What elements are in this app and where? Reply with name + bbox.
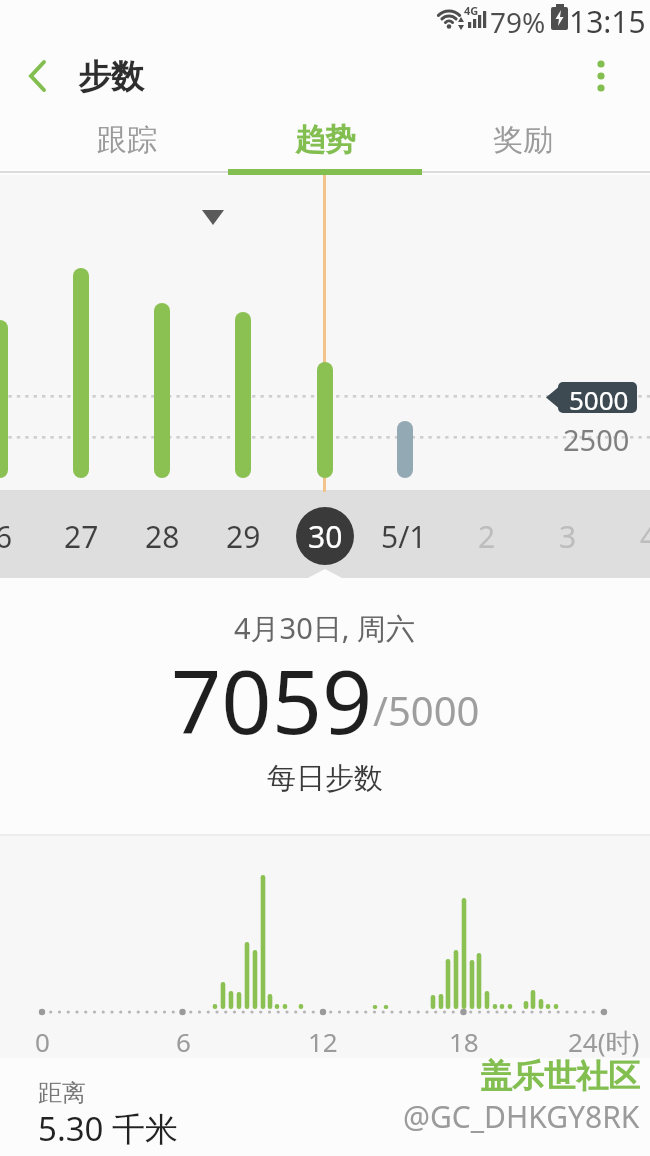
- button[interactable]: 4: [611, 498, 650, 574]
- staticText: 步数: [78, 56, 144, 98]
- staticText: 2500: [563, 420, 630, 459]
- staticText: 4月30日, 周六: [234, 608, 416, 648]
- button[interactable]: 27: [43, 498, 119, 574]
- staticText: 2: [478, 516, 496, 557]
- button[interactable]: 奖励: [443, 112, 603, 168]
- button[interactable]: 29: [205, 498, 281, 574]
- button[interactable]: 趋势: [245, 112, 405, 168]
- button[interactable]: 5/1: [366, 498, 442, 574]
- staticText: /5000: [373, 683, 480, 737]
- staticText: 盖乐世社区: [480, 1056, 640, 1096]
- staticText: 7059: [171, 640, 373, 745]
- staticText: 跟踪: [97, 121, 157, 159]
- staticText: 79%: [490, 3, 546, 41]
- staticText: 30: [308, 516, 343, 557]
- staticText: 24(时): [568, 1024, 640, 1060]
- staticText: 28: [145, 516, 180, 557]
- staticText: 距离: [38, 1078, 86, 1108]
- button[interactable]: 30: [296, 507, 354, 565]
- staticText: 5.30 千米: [38, 1106, 179, 1151]
- staticText: 每日步数: [267, 760, 383, 797]
- button[interactable]: [10, 50, 66, 102]
- staticText: 29: [226, 516, 261, 557]
- button[interactable]: 6: [0, 498, 42, 574]
- button[interactable]: 跟踪: [47, 112, 207, 168]
- button[interactable]: [576, 50, 626, 102]
- staticText: 3: [559, 516, 577, 557]
- staticText: 奖励: [493, 121, 553, 159]
- staticText: 18: [449, 1024, 479, 1059]
- staticText: 5000: [569, 382, 629, 417]
- staticText: 6: [0, 516, 13, 557]
- button[interactable]: 3: [530, 498, 606, 574]
- staticText: @GC_DHKGY8RK: [403, 1096, 640, 1137]
- staticText: 趋势: [295, 121, 355, 159]
- staticText: 13:15: [569, 1, 646, 42]
- staticText: 4G: [464, 3, 479, 18]
- staticText: 5/1: [381, 516, 427, 557]
- staticText: 0: [35, 1024, 50, 1059]
- staticText: 27: [64, 516, 99, 557]
- staticText: 4: [640, 516, 650, 557]
- button[interactable]: 2: [449, 498, 525, 574]
- staticText: 6: [176, 1024, 191, 1059]
- staticText: 12: [308, 1024, 338, 1059]
- button[interactable]: 28: [124, 498, 200, 574]
